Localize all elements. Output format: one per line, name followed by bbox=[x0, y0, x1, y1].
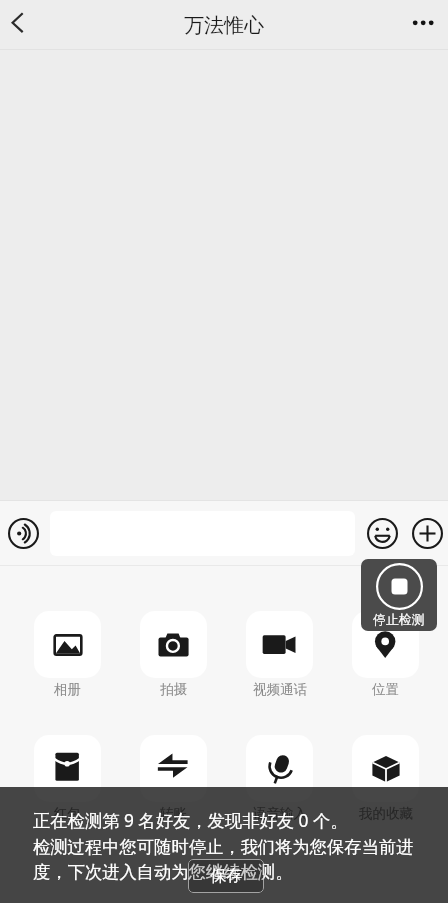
button[interactable]: 位置 bbox=[339, 611, 432, 698]
staticText: 万法惟心 bbox=[184, 13, 264, 38]
button[interactable]: 语音输入 bbox=[233, 735, 326, 822]
button[interactable]: Emoji bbox=[360, 511, 405, 556]
staticText: 停止检测 bbox=[373, 612, 425, 628]
button[interactable]: 转账 bbox=[127, 735, 220, 822]
button[interactable]: 我的收藏 bbox=[339, 735, 432, 822]
button[interactable]: 拍摄 bbox=[127, 611, 220, 698]
staticText: 相册 bbox=[54, 681, 81, 698]
button[interactable]: Back bbox=[0, 0, 50, 50]
button[interactable]: 停止检测 bbox=[361, 559, 437, 631]
staticText: 转账 bbox=[160, 805, 187, 822]
button[interactable]: 保存 bbox=[188, 859, 264, 893]
staticText: 视频通话 bbox=[253, 681, 307, 698]
staticText: 正在检测第 9 名好友，发现非好友 0 个。 检测过程中您可随时停止，我们将为您… bbox=[33, 809, 433, 883]
button[interactable]: Voice input bbox=[1, 511, 46, 556]
button[interactable]: More actions bbox=[405, 511, 448, 556]
staticText: 位置 bbox=[372, 681, 399, 698]
button[interactable]: More options bbox=[398, 0, 448, 50]
staticText: 我的收藏 bbox=[359, 805, 413, 822]
button[interactable]: 相册 bbox=[21, 611, 114, 698]
button[interactable]: 视频通话 bbox=[233, 611, 326, 698]
staticText: 语音输入 bbox=[253, 805, 307, 822]
staticText: 拍摄 bbox=[160, 681, 187, 698]
staticText: 保存 bbox=[210, 866, 242, 886]
staticText: 红包 bbox=[54, 805, 81, 822]
button[interactable]: 红包 bbox=[21, 735, 114, 822]
